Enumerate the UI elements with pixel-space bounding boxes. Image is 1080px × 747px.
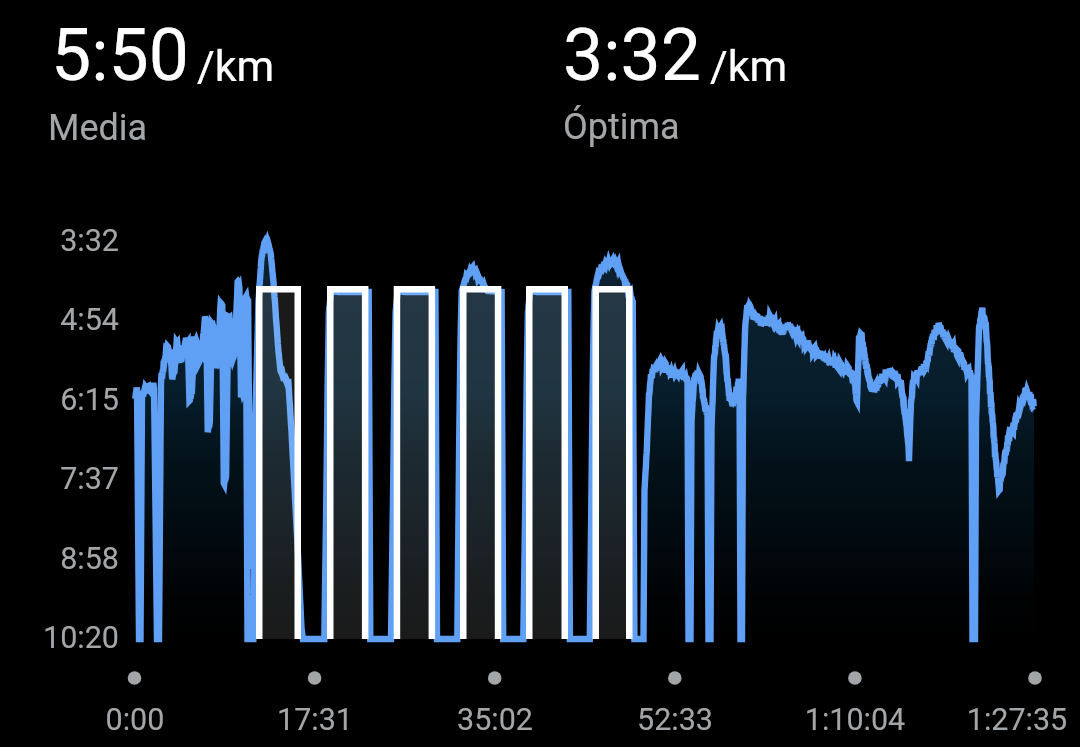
staticText: 10:20 xyxy=(0,620,119,656)
button[interactable]: 5:50 xyxy=(0,0,1080,160)
staticText: 6:15 xyxy=(0,382,119,418)
staticText: 1:10:04 xyxy=(705,702,1005,738)
staticText: 8:58 xyxy=(0,541,119,577)
staticText: Media xyxy=(48,107,648,149)
staticText: /km xyxy=(197,41,797,91)
staticText: 1:27:35 xyxy=(867,702,1080,738)
staticText: /km xyxy=(710,41,1080,91)
staticText: 3:32 xyxy=(563,14,1080,98)
staticText: 3:32 xyxy=(0,223,119,259)
staticText: 7:37 xyxy=(0,461,119,497)
staticText: Óptima xyxy=(563,106,1080,148)
staticText: 35:02 xyxy=(345,702,645,738)
staticText: 17:31 xyxy=(165,702,465,738)
staticText: 4:54 xyxy=(0,302,119,338)
staticText: 5:50 xyxy=(51,14,651,98)
staticText: 0:00 xyxy=(0,702,285,738)
staticText: 52:33 xyxy=(525,702,825,738)
